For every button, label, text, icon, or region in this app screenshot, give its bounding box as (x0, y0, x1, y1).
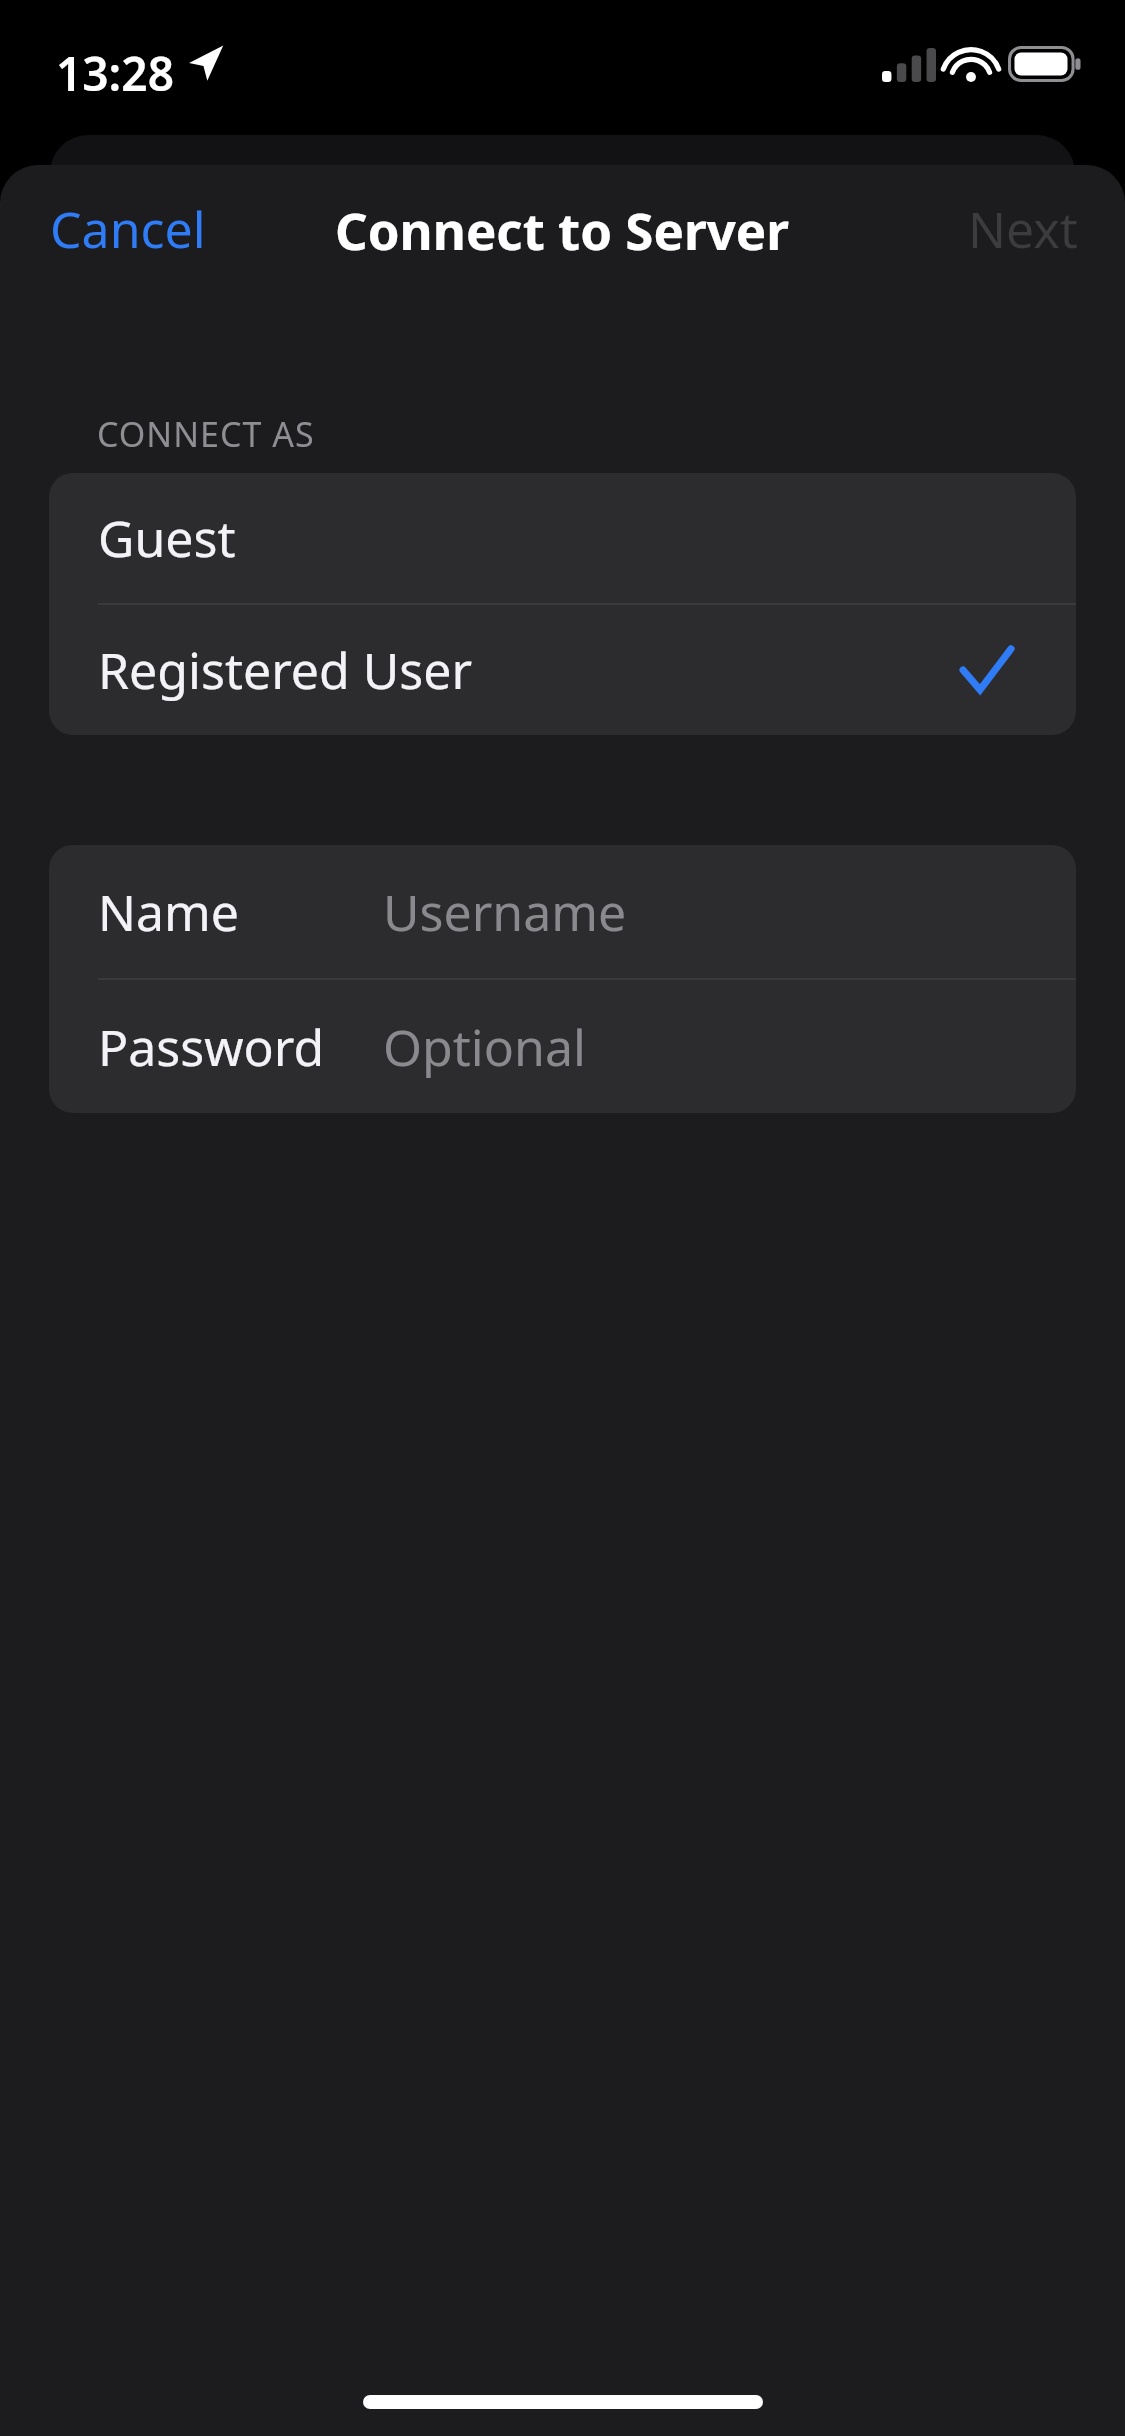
staticText: Connect to Server (335, 195, 790, 264)
button[interactable]: Next (968, 195, 1078, 263)
staticText: Next (968, 195, 1078, 263)
staticText: Optional (383, 1013, 586, 1081)
staticText: Password (98, 1013, 383, 1081)
button[interactable]: Guest (49, 473, 1076, 603)
button[interactable]: Password (49, 980, 1076, 1113)
button[interactable]: Cancel (50, 195, 206, 263)
other: Selected (962, 647, 1012, 693)
staticText: 13:28 (56, 42, 174, 105)
staticText: Guest (98, 504, 236, 572)
button[interactable]: Name (49, 845, 1076, 978)
staticText: Cancel (50, 195, 206, 263)
staticText: Name (98, 878, 383, 946)
staticText: CONNECT AS (97, 411, 315, 457)
button[interactable]: Registered User (49, 605, 1076, 735)
staticText: Registered User (98, 636, 473, 704)
staticText: Username (383, 878, 627, 946)
